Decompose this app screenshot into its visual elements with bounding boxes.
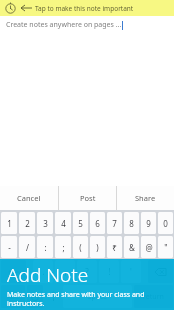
button[interactable]: Important xyxy=(0,0,174,16)
staticText: ? xyxy=(85,266,89,277)
button[interactable]: 9 xyxy=(141,212,156,234)
button[interactable]: ? xyxy=(77,260,97,283)
staticText: Add Note xyxy=(7,262,89,288)
button[interactable]: " xyxy=(158,236,173,258)
staticText: Post xyxy=(80,193,96,203)
button[interactable]: . xyxy=(33,260,53,283)
button[interactable]: Emoji xyxy=(27,285,43,308)
staticText: 6 xyxy=(95,218,100,229)
staticText: 9 xyxy=(146,218,151,229)
staticText: 5 xyxy=(78,218,83,229)
staticText: ABC xyxy=(7,293,19,301)
staticText: return xyxy=(143,292,164,302)
staticText: 4 xyxy=(61,218,66,229)
button[interactable]: ) xyxy=(90,236,105,258)
button[interactable]: 8 xyxy=(124,212,139,234)
button[interactable]: : xyxy=(37,236,53,258)
staticText: space xyxy=(88,292,107,302)
staticText: Cancel xyxy=(17,193,41,203)
button[interactable]: space xyxy=(63,285,132,308)
other: Important xyxy=(5,3,16,14)
button[interactable]: ₹ xyxy=(107,236,122,258)
staticText: ₹ xyxy=(112,242,117,253)
staticText: 3 xyxy=(43,218,48,229)
staticText: Tap to make this note important xyxy=(35,4,134,13)
button[interactable]: & xyxy=(124,236,139,258)
button[interactable]: 1 xyxy=(1,212,17,234)
button[interactable]: 3 xyxy=(37,212,53,234)
staticText: 1 xyxy=(7,218,12,229)
button[interactable]: @ xyxy=(141,236,156,258)
staticText: " xyxy=(164,242,168,253)
staticText: ) xyxy=(96,242,99,253)
button[interactable]: - xyxy=(1,236,17,258)
staticText: - xyxy=(8,242,11,253)
button[interactable]: 4 xyxy=(55,212,71,234)
button[interactable]: / xyxy=(19,236,35,258)
button[interactable]: ABC xyxy=(1,285,25,308)
button[interactable]: Cancel xyxy=(0,186,58,210)
button[interactable]: 7 xyxy=(107,212,122,234)
button[interactable]: #+= xyxy=(1,260,26,283)
button[interactable]: ; xyxy=(55,236,71,258)
button[interactable]: ( xyxy=(73,236,88,258)
staticText: Make notes and share with your class and… xyxy=(7,290,145,308)
staticText: & xyxy=(129,242,135,253)
staticText: , xyxy=(64,266,67,277)
button[interactable]: 6 xyxy=(90,212,105,234)
staticText: #+= xyxy=(8,268,19,276)
staticText: 7 xyxy=(112,218,117,229)
staticText: ! xyxy=(108,266,111,277)
staticText: 8 xyxy=(129,218,134,229)
button[interactable]: Voice input xyxy=(45,285,61,308)
button[interactable]: 0 xyxy=(158,212,173,234)
button[interactable]: Post xyxy=(59,186,116,210)
staticText: Share xyxy=(135,193,156,203)
button[interactable]: , xyxy=(55,260,75,283)
button[interactable]: Share xyxy=(117,186,174,210)
staticText: / xyxy=(26,242,29,253)
staticText: ( xyxy=(79,242,82,253)
staticText: 0 xyxy=(163,218,168,229)
staticText: 2 xyxy=(25,218,30,229)
staticText: @ xyxy=(145,242,153,253)
button[interactable]: 2 xyxy=(19,212,35,234)
staticText: ; xyxy=(62,242,65,253)
button[interactable]: 5 xyxy=(73,212,88,234)
button[interactable]: return xyxy=(134,285,173,308)
staticText: : xyxy=(44,242,47,253)
staticText: Create notes anywhere on pages ... xyxy=(6,20,122,30)
